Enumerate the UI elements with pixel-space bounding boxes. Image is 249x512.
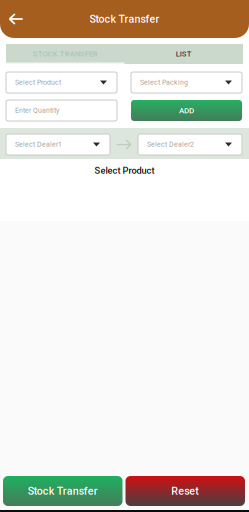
button[interactable]: STOCK TRANSFER: [6, 44, 124, 64]
staticText: Select Product: [15, 78, 61, 86]
staticText: Select Dealer2: [147, 140, 194, 148]
staticText: LIST: [176, 49, 192, 58]
staticText: Select Product: [94, 165, 154, 176]
button[interactable]: Select Packing: [131, 72, 242, 93]
button[interactable]: Enter Quantity: [6, 100, 117, 121]
staticText: Reset: [171, 485, 199, 497]
button[interactable]: LIST: [124, 44, 243, 64]
button[interactable]: Select Dealer1: [6, 134, 110, 155]
staticText: STOCK TRANSFER: [33, 49, 98, 58]
staticText: Select Packing: [140, 78, 188, 86]
button[interactable]: Select Dealer2: [138, 134, 242, 155]
button[interactable]: Stock Transfer: [3, 476, 122, 506]
button[interactable]: Back: [0, 0, 32, 38]
button[interactable]: ADD: [131, 100, 242, 121]
staticText: ADD: [179, 106, 194, 115]
staticText: Stock Transfer: [28, 485, 98, 497]
staticText: Select Dealer1: [15, 140, 62, 148]
staticText: Enter Quantity: [15, 106, 59, 114]
button[interactable]: Select Product: [6, 72, 117, 93]
staticText: Stock Transfer: [89, 13, 159, 25]
button[interactable]: Reset: [125, 476, 245, 506]
